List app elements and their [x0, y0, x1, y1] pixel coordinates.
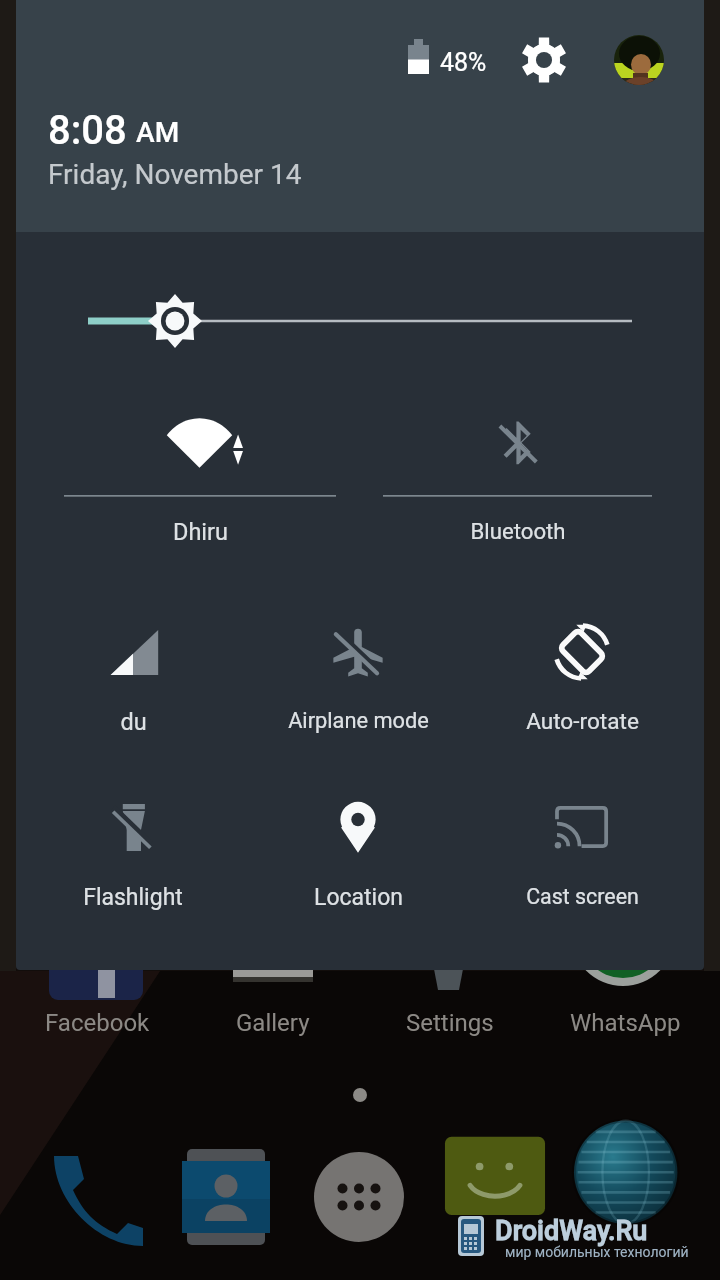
- staticText: мир мобильных технологий: [505, 1244, 689, 1260]
- staticText: du: [120, 708, 147, 736]
- button[interactable]: du: [21, 611, 245, 741]
- button[interactable]: Browser: [574, 1126, 684, 1236]
- button[interactable]: Location: [246, 787, 470, 917]
- staticText: AM: [136, 116, 180, 149]
- staticText: Gallery: [236, 1009, 310, 1037]
- staticText: Flashlight: [83, 884, 183, 911]
- staticText: Settings: [406, 1009, 494, 1037]
- button[interactable]: Cast screen: [470, 787, 694, 917]
- staticText: Dhiru: [173, 518, 228, 546]
- staticText: Bluetooth: [470, 518, 566, 544]
- staticText: Airplane mode: [288, 708, 429, 734]
- button[interactable]: Phone: [43, 1146, 143, 1246]
- button[interactable]: Settings: [365, 1009, 535, 1043]
- staticText: WhatsApp: [570, 1009, 681, 1037]
- staticText: Cast screen: [526, 884, 639, 909]
- button[interactable]: Settings: [516, 32, 572, 88]
- button[interactable]: Contacts: [176, 1147, 276, 1247]
- button[interactable]: Facebook: [12, 1009, 182, 1043]
- staticText: 48%: [440, 48, 487, 77]
- button[interactable]: Bluetooth: [383, 400, 652, 550]
- button[interactable]: Flashlight: [21, 787, 245, 917]
- button[interactable]: All apps: [309, 1147, 409, 1247]
- button[interactable]: Gallery: [188, 1009, 358, 1043]
- button[interactable]: Dhiru: [64, 400, 336, 550]
- button[interactable]: Auto-rotate: [470, 611, 694, 741]
- staticText: Friday, November 14: [48, 158, 302, 191]
- button[interactable]: Messaging: [440, 1128, 550, 1238]
- button[interactable]: WhatsApp: [540, 1009, 710, 1043]
- staticText: Auto-rotate: [526, 708, 639, 734]
- staticText: Location: [314, 884, 403, 911]
- staticText: DroidWay.Ru: [495, 1215, 648, 1247]
- staticText: Facebook: [45, 1009, 150, 1037]
- button[interactable]: User profile: [614, 35, 664, 85]
- staticText: 8:08: [48, 107, 127, 154]
- button[interactable]: Airplane mode: [246, 611, 470, 741]
